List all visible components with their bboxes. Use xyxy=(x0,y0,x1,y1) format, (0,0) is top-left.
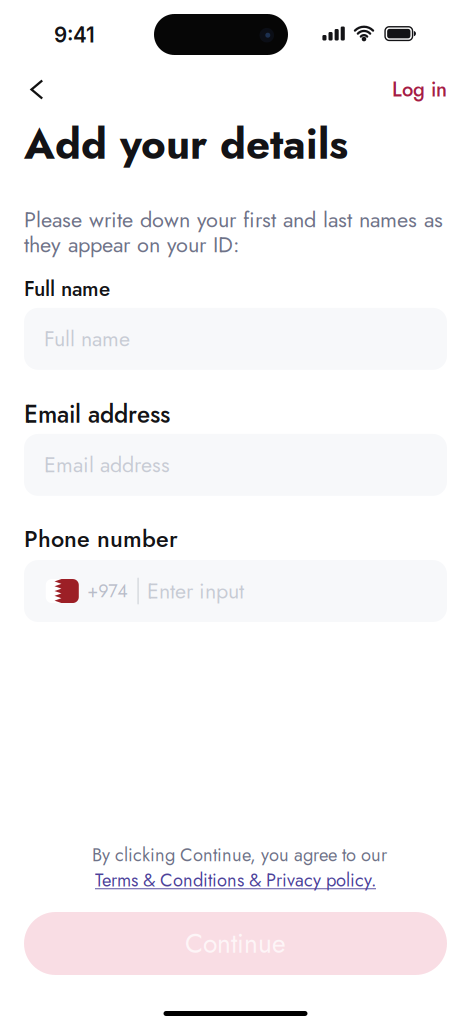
staticText: Continue xyxy=(185,928,286,959)
button[interactable]: Full name xyxy=(24,308,447,370)
button[interactable]: Continue xyxy=(24,912,447,975)
staticText: Full name xyxy=(24,277,110,301)
button[interactable]: Log in xyxy=(392,78,447,101)
button[interactable] xyxy=(24,74,54,104)
staticText: Enter input xyxy=(147,579,244,603)
staticText: Terms & Conditions & Privacy policy. xyxy=(95,870,376,891)
staticText: they appear on your ID: xyxy=(24,232,240,257)
button[interactable]: +974 xyxy=(24,560,447,622)
staticText: Email address xyxy=(44,452,170,477)
staticText: 9:41 xyxy=(54,22,95,47)
staticText: Phone number xyxy=(24,525,178,552)
staticText: Add your details xyxy=(24,120,348,169)
staticText: Full name xyxy=(44,326,130,351)
staticText: +974 xyxy=(87,581,127,601)
button[interactable]: Email address xyxy=(24,434,447,496)
button[interactable]: Terms & Conditions & Privacy policy. xyxy=(95,870,376,891)
staticText: Please write down your first and last na… xyxy=(24,207,443,232)
staticText: By clicking Continue, you agree to our xyxy=(92,844,387,866)
staticText: Log in xyxy=(392,78,447,101)
staticText: Email address xyxy=(24,400,170,428)
